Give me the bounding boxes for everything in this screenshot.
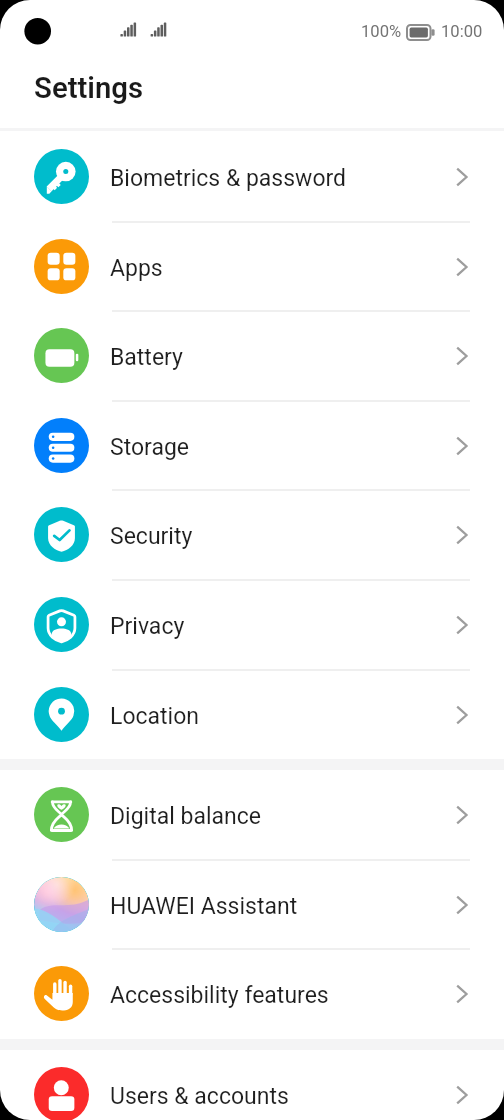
button[interactable]: Location: [0, 669, 504, 759]
staticText: Battery: [110, 344, 183, 371]
button[interactable]: HUAWEI Assistant: [0, 859, 504, 949]
staticText: Settings: [34, 71, 144, 105]
button[interactable]: Biometrics & password: [0, 131, 504, 221]
staticText: Biometrics & password: [110, 165, 347, 192]
staticText: Location: [110, 703, 199, 730]
button[interactable]: Privacy: [0, 579, 504, 669]
button[interactable]: Accessibility features: [0, 948, 504, 1038]
staticText: Storage: [110, 434, 190, 461]
staticText: Apps: [110, 255, 163, 282]
staticText: 10:00: [441, 22, 483, 41]
button[interactable]: Users & accounts: [0, 1049, 504, 1120]
staticText: 100%: [361, 22, 402, 41]
button[interactable]: Storage: [0, 400, 504, 490]
button[interactable]: Apps: [0, 221, 504, 311]
staticText: Digital balance: [110, 803, 261, 830]
staticText: HUAWEI Assistant: [110, 893, 298, 920]
staticText: Privacy: [110, 613, 185, 640]
button[interactable]: Battery: [0, 310, 504, 400]
button[interactable]: Digital balance: [0, 769, 504, 859]
staticText: Accessibility features: [110, 982, 329, 1009]
staticText: Users & accounts: [110, 1083, 289, 1110]
staticText: Security: [110, 523, 193, 550]
button[interactable]: Security: [0, 489, 504, 579]
